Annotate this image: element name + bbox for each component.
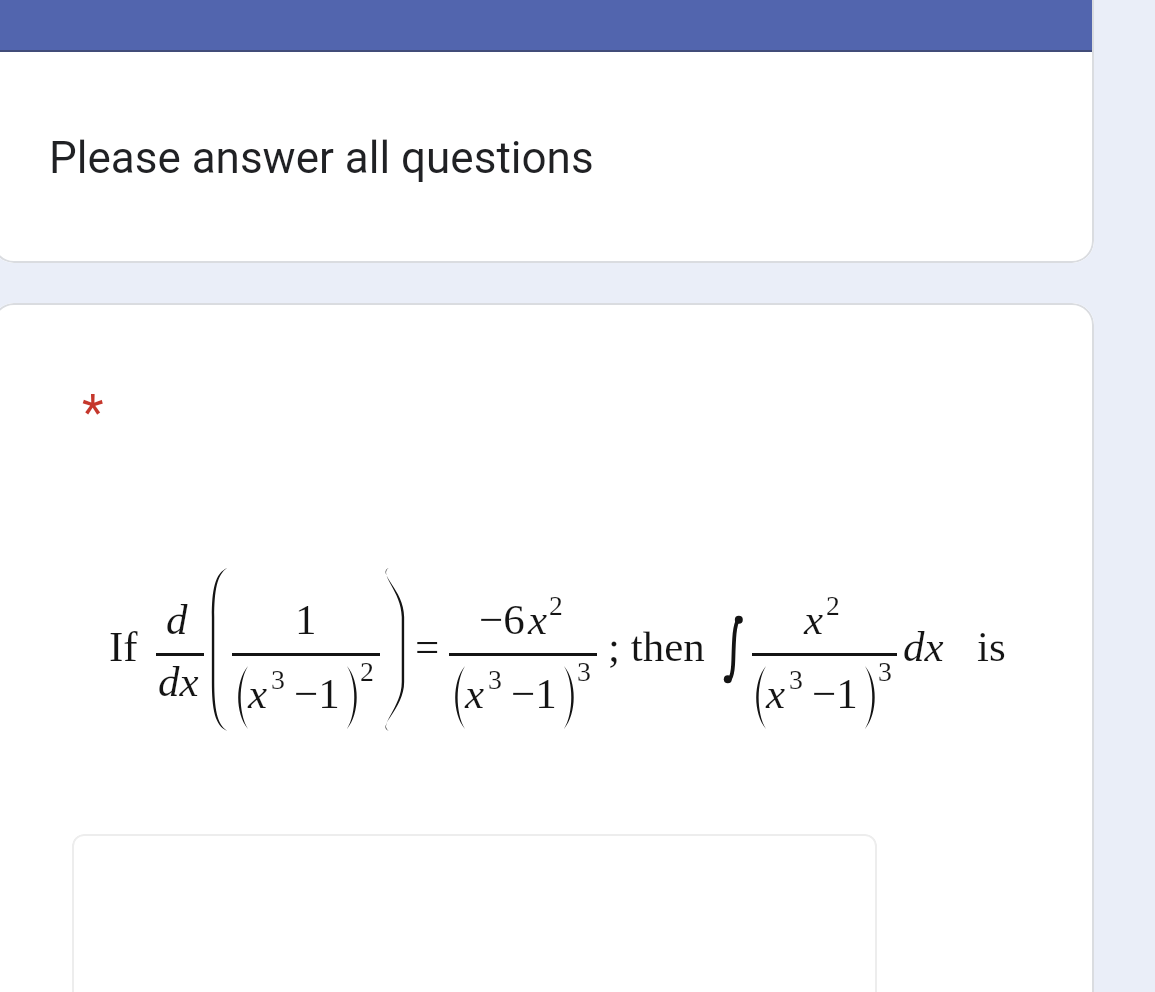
staticText: 1: [295, 596, 317, 644]
staticText: dx: [158, 658, 199, 706]
staticText: is: [977, 623, 1006, 671]
staticText: −1: [812, 670, 858, 718]
staticText: ; then: [608, 623, 705, 671]
staticText: 2: [826, 590, 840, 620]
staticText: 3: [577, 656, 591, 687]
staticText: *: [82, 384, 104, 443]
staticText: 3: [789, 664, 803, 695]
staticText: 2: [549, 590, 563, 620]
staticText: =: [415, 623, 440, 671]
staticText: x: [766, 670, 786, 718]
staticText: x: [248, 670, 268, 718]
staticText: −1: [511, 670, 557, 718]
staticText: Please answer all questions: [49, 132, 594, 184]
staticText: x: [804, 596, 824, 644]
staticText: 3: [488, 664, 502, 695]
staticText: dx: [903, 623, 944, 671]
staticText: 2: [360, 656, 374, 687]
staticText: −6: [479, 596, 525, 644]
staticText: d: [166, 596, 188, 644]
staticText: 3: [878, 656, 892, 687]
staticText: x: [528, 596, 548, 644]
staticText: x: [465, 670, 485, 718]
staticText: −1: [294, 670, 340, 718]
staticText: If: [109, 623, 138, 671]
staticText: 3: [271, 664, 285, 695]
button[interactable]: Required question: [0, 303, 1094, 992]
button[interactable]: Please answer all questions: [0, 0, 1094, 263]
